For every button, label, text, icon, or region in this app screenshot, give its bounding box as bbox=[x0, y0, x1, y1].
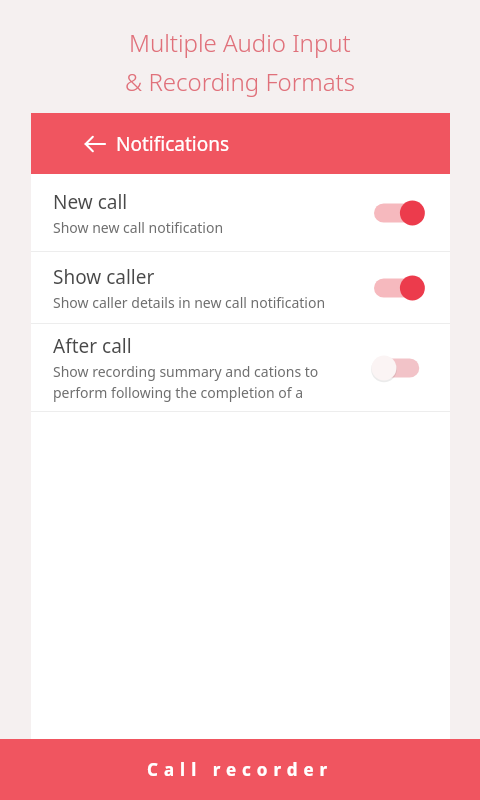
staticText: Notifications bbox=[116, 131, 230, 157]
button[interactable]: On bbox=[374, 272, 432, 304]
staticText: Show caller bbox=[53, 264, 155, 290]
button[interactable]: Call recorder bbox=[0, 739, 480, 800]
staticText: perform following the completion of a bbox=[53, 383, 304, 402]
button[interactable]: Off bbox=[374, 352, 432, 384]
staticText: & Recording Formats bbox=[125, 65, 355, 98]
staticText: Call recorder bbox=[147, 758, 334, 781]
staticText: New call bbox=[53, 189, 128, 215]
staticText: After call bbox=[53, 333, 132, 359]
button[interactable]: On bbox=[374, 197, 432, 229]
button[interactable]: Show caller bbox=[31, 252, 450, 323]
staticText: Show caller details in new call notifica… bbox=[53, 293, 326, 312]
staticText: Multiple Audio Input bbox=[129, 26, 351, 59]
staticText: Show new call notification bbox=[53, 218, 224, 237]
button[interactable]: Back bbox=[72, 121, 118, 167]
staticText: Show recording summary and cations to bbox=[53, 362, 319, 381]
button[interactable]: After call bbox=[31, 324, 450, 411]
button[interactable]: New call bbox=[31, 174, 450, 251]
